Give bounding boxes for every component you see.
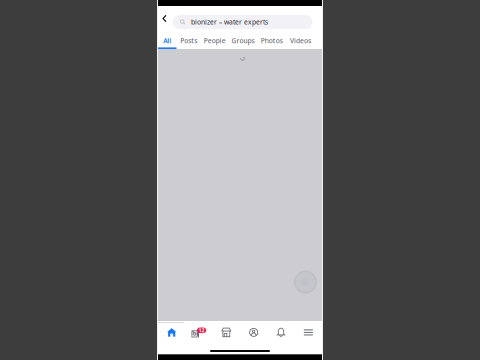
button[interactable]: Back <box>158 9 171 28</box>
button[interactable]: All <box>158 31 176 49</box>
button[interactable]: Marketplace <box>213 324 240 344</box>
button[interactable]: Home <box>158 324 185 344</box>
button[interactable]: Floating video player <box>292 268 319 295</box>
staticText: Videos <box>290 36 311 45</box>
staticText: Posts <box>180 36 197 45</box>
button[interactable]: Menu <box>295 324 322 344</box>
button[interactable]: Groups <box>228 31 257 49</box>
staticText: 12 <box>199 327 205 334</box>
button[interactable]: Photos <box>257 31 286 49</box>
button[interactable]: Posts <box>176 31 201 49</box>
staticText: All <box>163 36 171 45</box>
button[interactable]: Videos <box>286 31 315 49</box>
button[interactable]: Profile <box>240 324 267 344</box>
button[interactable]: People <box>201 31 228 49</box>
staticText: People <box>204 36 226 45</box>
button[interactable]: bionizer – water experts <box>172 15 312 29</box>
button[interactable]: Video <box>185 324 213 344</box>
staticText: Photos <box>261 36 283 45</box>
staticText: Groups <box>231 36 254 45</box>
button[interactable]: Notifications <box>267 324 295 344</box>
staticText: bionizer – water experts <box>191 18 268 26</box>
